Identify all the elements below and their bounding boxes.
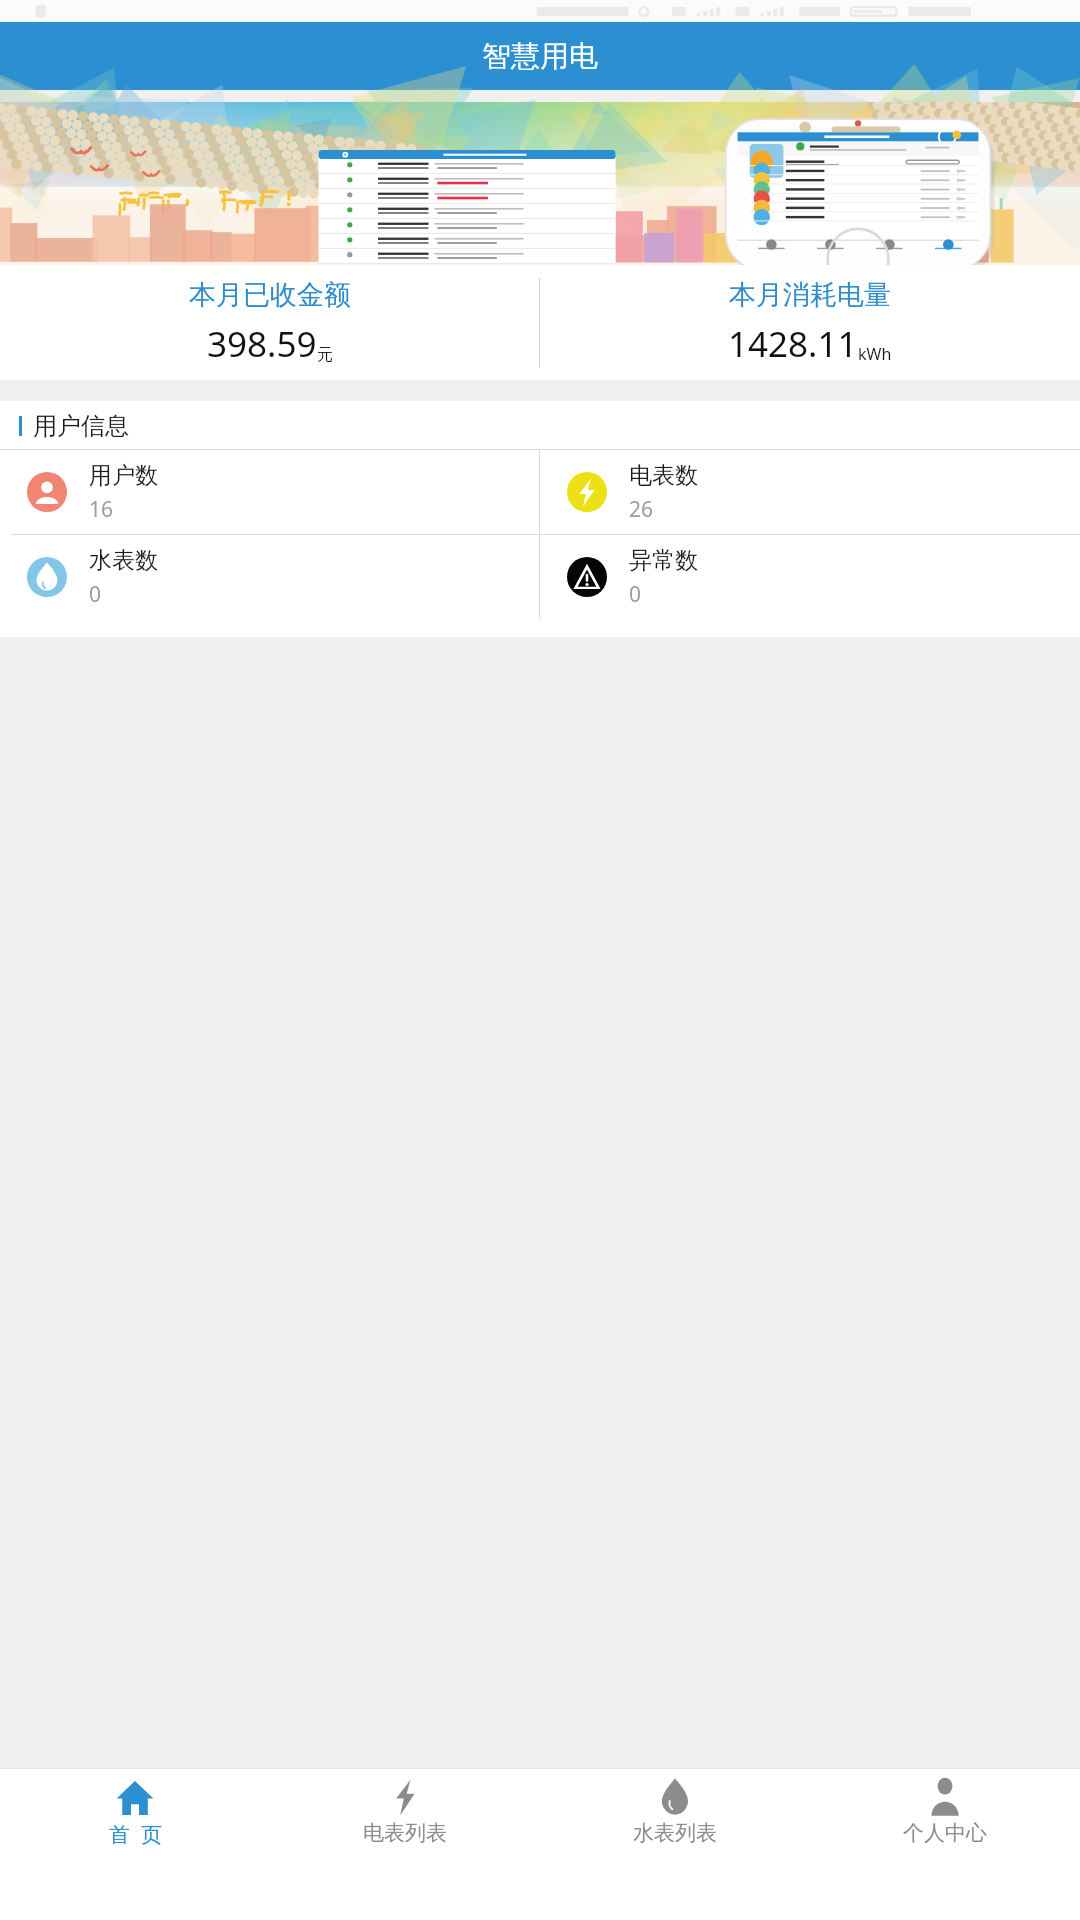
staticText: 用户数 [89, 461, 158, 490]
button[interactable]: 首 页 [0, 1768, 270, 1920]
button[interactable]: 水表列表 [540, 1768, 810, 1920]
staticText: 本月已收金额 [189, 278, 351, 312]
staticText: 1428.11 [728, 320, 858, 368]
staticText: 用户信息 [33, 411, 129, 441]
staticText: 26 [629, 495, 654, 524]
staticText: 元 [317, 345, 333, 365]
staticText: 398.59 [207, 320, 317, 368]
button[interactable]: 个人中心 [810, 1768, 1080, 1920]
staticText: 水表列表 [633, 1820, 717, 1846]
staticText: kWh [858, 343, 892, 365]
staticText: 16 [89, 495, 114, 524]
button[interactable]: 水表数 [0, 535, 539, 619]
button[interactable]: 本月已收金额 [0, 274, 539, 372]
button[interactable]: 本月消耗电量 [540, 274, 1080, 372]
staticText: 电表数 [629, 461, 698, 490]
button[interactable]: 电表列表 [270, 1768, 540, 1920]
staticText: 个人中心 [903, 1820, 987, 1846]
staticText: 首 页 [109, 1820, 162, 1849]
staticText: 智慧用电 [482, 38, 598, 75]
staticText: 电表列表 [363, 1820, 447, 1846]
button[interactable]: 异常数 [540, 535, 1080, 619]
staticText: 水表数 [89, 546, 158, 575]
staticText: 本月消耗电量 [729, 278, 891, 312]
staticText: 0 [89, 580, 102, 609]
staticText: 0 [629, 580, 642, 609]
button[interactable]: 电表数 [540, 450, 1080, 534]
button[interactable]: 用户数 [0, 450, 539, 534]
staticText: 异常数 [629, 546, 698, 575]
